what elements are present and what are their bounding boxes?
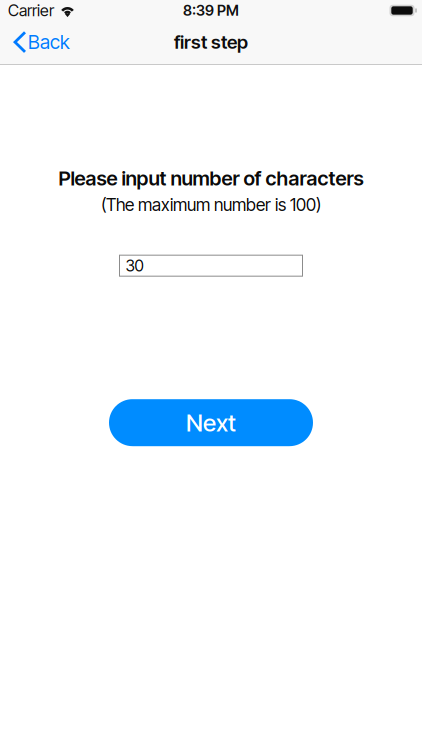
staticText: Carrier	[8, 1, 54, 20]
staticText: Next	[186, 408, 236, 437]
staticText: Back	[28, 30, 70, 54]
staticText: 8:39 PM	[183, 2, 239, 19]
button[interactable]: Back	[0, 21, 80, 63]
button[interactable]: Number of characters	[119, 255, 302, 276]
staticText: Please input number of characters	[58, 166, 363, 190]
staticText: (The maximum number is 100)	[101, 194, 321, 215]
staticText: first step	[174, 31, 248, 53]
staticText: 30	[125, 256, 143, 275]
button[interactable]: Next	[109, 399, 313, 446]
